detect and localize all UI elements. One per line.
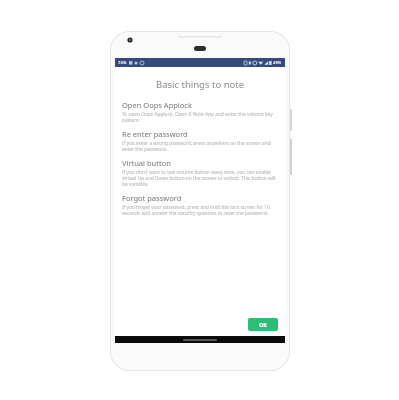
staticText: Forgot password	[122, 193, 182, 203]
staticText: If you forget your password, press and h…	[122, 204, 278, 216]
button[interactable]: OK	[248, 318, 278, 331]
staticText: OK	[259, 321, 268, 328]
staticText: Virtual button	[122, 158, 171, 168]
staticText: If you enter a wrong password, press any…	[122, 140, 278, 152]
staticText: 49%	[273, 60, 282, 66]
staticText: To open Oops Applock, Open K Note App an…	[122, 111, 278, 123]
staticText: Re enter password	[122, 129, 188, 139]
staticText: 7:56	[118, 60, 127, 66]
staticText: Open Oops Applock	[122, 100, 192, 110]
staticText: If you don't want to use volume button e…	[122, 169, 278, 187]
staticText: Basic things to note	[122, 78, 278, 91]
